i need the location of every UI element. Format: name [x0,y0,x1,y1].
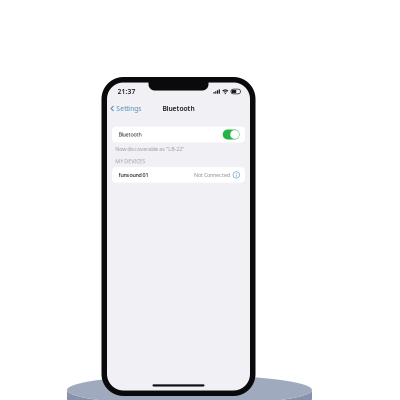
button[interactable]: Bluetooth [112,126,245,142]
staticText: Bluetooth [118,131,141,138]
staticText: MY DEVICES [115,158,145,165]
staticText: funsound 01 [118,171,148,178]
button[interactable]: Settings [109,103,143,114]
staticText: 21:37 [117,87,135,96]
staticText: Not Connected [194,171,230,178]
staticText: Bluetooth [162,104,194,113]
staticText: Now discoverable as “LB-22” [115,145,184,153]
button[interactable]: funsound 01 [112,167,245,183]
staticText: Settings [116,104,141,113]
